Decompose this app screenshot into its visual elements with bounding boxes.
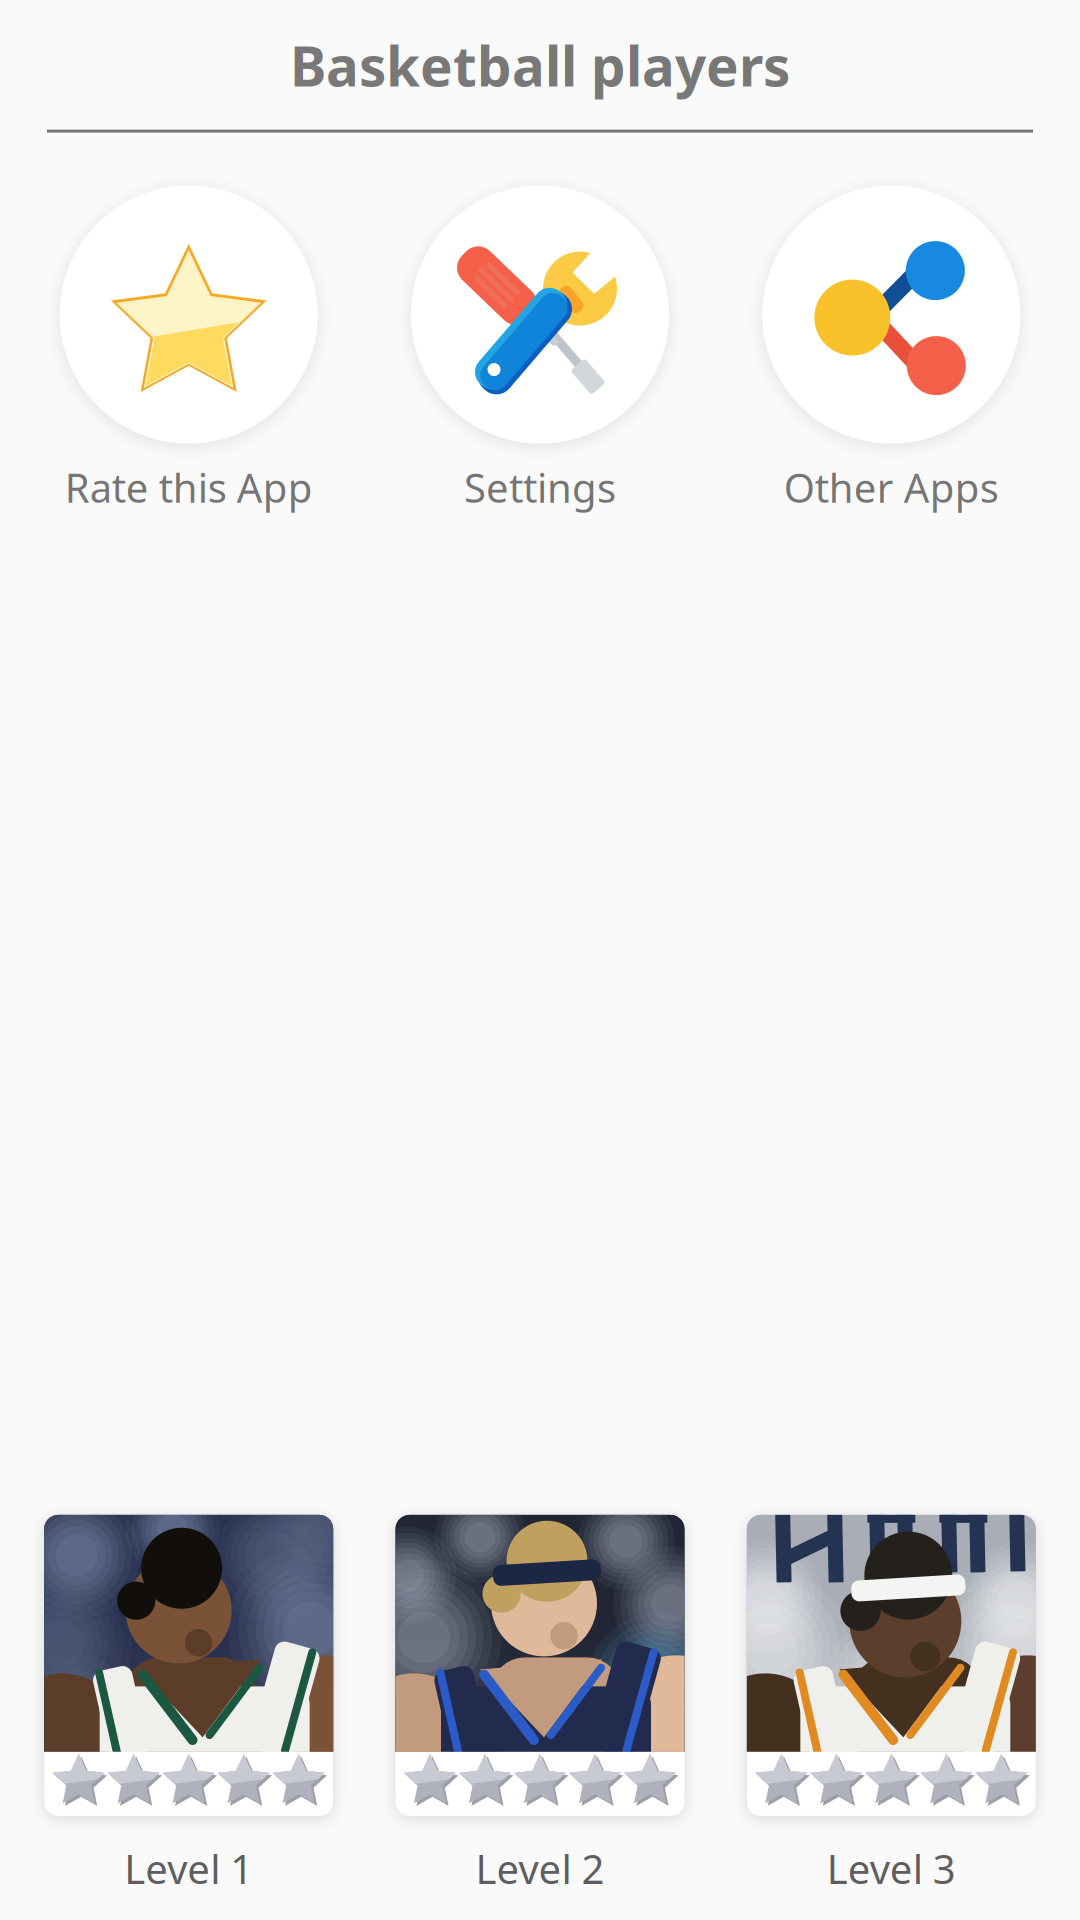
staticText: Level 1 <box>124 1842 253 1895</box>
staticText: Rate this App <box>65 461 313 514</box>
button[interactable]: Level 1 <box>13 1515 364 1895</box>
staticText: Other Apps <box>784 461 999 514</box>
staticText: Level 3 <box>827 1842 956 1895</box>
staticText: Basketball players <box>290 29 790 102</box>
staticText: Settings <box>464 461 616 514</box>
staticText: Level 2 <box>475 1842 604 1895</box>
button[interactable]: Other Apps <box>716 186 1067 514</box>
button[interactable]: Level 3 <box>716 1515 1067 1895</box>
button[interactable]: Rate this App <box>13 186 364 514</box>
button[interactable]: Level 2 <box>364 1515 716 1895</box>
button[interactable]: Settings <box>364 186 716 514</box>
